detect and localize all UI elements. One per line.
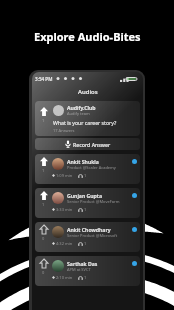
staticText: 1 (84, 241, 87, 246)
staticText: 3:33 min (56, 207, 73, 212)
other: Upvote (40, 225, 48, 234)
staticText: 1 (84, 173, 87, 178)
staticText: Audios (78, 88, 98, 96)
staticText: 0 (42, 270, 45, 275)
staticText: Ankit Chowdhary (67, 226, 111, 233)
staticText: 1 (84, 275, 87, 280)
button[interactable]: Upvote (35, 256, 140, 286)
other: Upvote (40, 107, 48, 116)
staticText: Product @Scaler Academy (67, 165, 116, 170)
staticText: 17 Answers (53, 128, 75, 133)
staticText: 3:54 PM (35, 76, 53, 82)
staticText: APM at SVCT (67, 267, 91, 272)
staticText: 1 (84, 207, 87, 212)
staticText: 4:32 min (56, 241, 73, 246)
staticText: 1 (42, 168, 45, 173)
other: Upvote (40, 191, 48, 200)
staticText: Record Answer (73, 141, 111, 148)
button[interactable]: Upvote (35, 188, 140, 218)
staticText: Senior Product @Microsoft (67, 233, 118, 238)
button[interactable]: Upvote (35, 101, 140, 136)
staticText: What is your career story? (53, 119, 117, 126)
staticText: Explore Audio-Bites (34, 29, 141, 44)
staticText: Sarthak Das (67, 260, 98, 267)
staticText: Gunjan Gupta (67, 192, 103, 199)
staticText: 1:09 min (56, 173, 73, 178)
other: Upvote (40, 259, 48, 268)
staticText: 1 (42, 118, 45, 123)
staticText: Ankit Shukla (67, 158, 99, 165)
staticText: 1 (42, 202, 45, 207)
button[interactable]: Upvote (35, 154, 140, 184)
button[interactable]: Upvote (35, 222, 140, 252)
staticText: Audify.Club (67, 104, 96, 111)
button[interactable]: Record Answer (35, 138, 140, 150)
staticText: 0 (42, 236, 45, 241)
staticText: 2:10 min (56, 275, 73, 280)
other: Upvote (40, 157, 48, 166)
staticText: Audify team (67, 111, 90, 116)
staticText: Senior Product @MoveFarm (67, 199, 120, 204)
